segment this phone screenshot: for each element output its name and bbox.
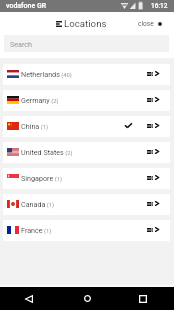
staticText: United States (2) <box>21 148 73 156</box>
button[interactable]: close <box>138 20 174 28</box>
staticText: Singapore (1) <box>21 174 62 182</box>
button[interactable]: Canada (1) <box>3 194 170 215</box>
staticText: vodafone GR <box>6 2 47 10</box>
button[interactable]: Netherlands (40) <box>3 64 170 85</box>
staticText: close <box>138 20 154 28</box>
staticText: Locations <box>64 18 107 29</box>
button[interactable]: Home <box>58 285 116 310</box>
staticText: China (1) <box>21 122 48 130</box>
button[interactable]: Recent apps <box>116 285 174 310</box>
button[interactable]: Search <box>4 35 169 52</box>
staticText: Netherlands (40) <box>21 70 72 78</box>
button[interactable]: China (1) <box>3 116 170 137</box>
staticText: France (1) <box>21 226 52 234</box>
button[interactable]: France (1) <box>3 220 170 241</box>
staticText: 16:12 <box>151 2 168 10</box>
button[interactable]: Germany (2) <box>3 90 170 111</box>
button[interactable]: Back <box>0 285 58 310</box>
staticText: Canada (1) <box>21 200 55 208</box>
button[interactable]: Singapore (1) <box>3 168 170 189</box>
button[interactable]: United States (2) <box>3 142 170 163</box>
staticText: Search <box>10 40 33 48</box>
staticText: Germany (2) <box>21 96 59 104</box>
